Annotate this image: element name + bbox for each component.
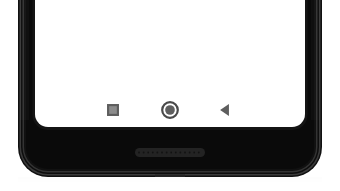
button[interactable]: Back bbox=[214, 97, 240, 123]
button[interactable]: Recent apps bbox=[100, 97, 126, 123]
button[interactable]: Home bbox=[157, 97, 183, 123]
